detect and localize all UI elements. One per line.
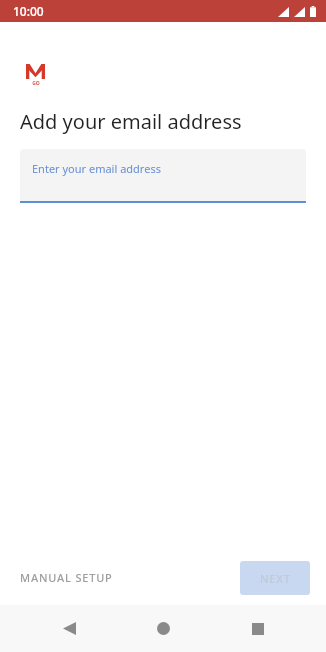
staticText: MANUAL SETUP <box>20 570 113 585</box>
button[interactable]: Home <box>137 605 189 652</box>
button[interactable]: Enter your email address <box>20 149 306 201</box>
staticText: Add your email address <box>20 108 242 135</box>
button[interactable]: MANUAL SETUP <box>10 562 123 593</box>
button[interactable]: NEXT <box>240 561 310 595</box>
button[interactable]: Recent apps <box>232 605 284 652</box>
staticText: NEXT <box>260 571 291 586</box>
button[interactable]: Back <box>43 605 95 652</box>
staticText: 10:00 <box>13 3 44 19</box>
staticText: GO <box>32 80 40 87</box>
staticText: Enter your email address <box>32 161 161 176</box>
